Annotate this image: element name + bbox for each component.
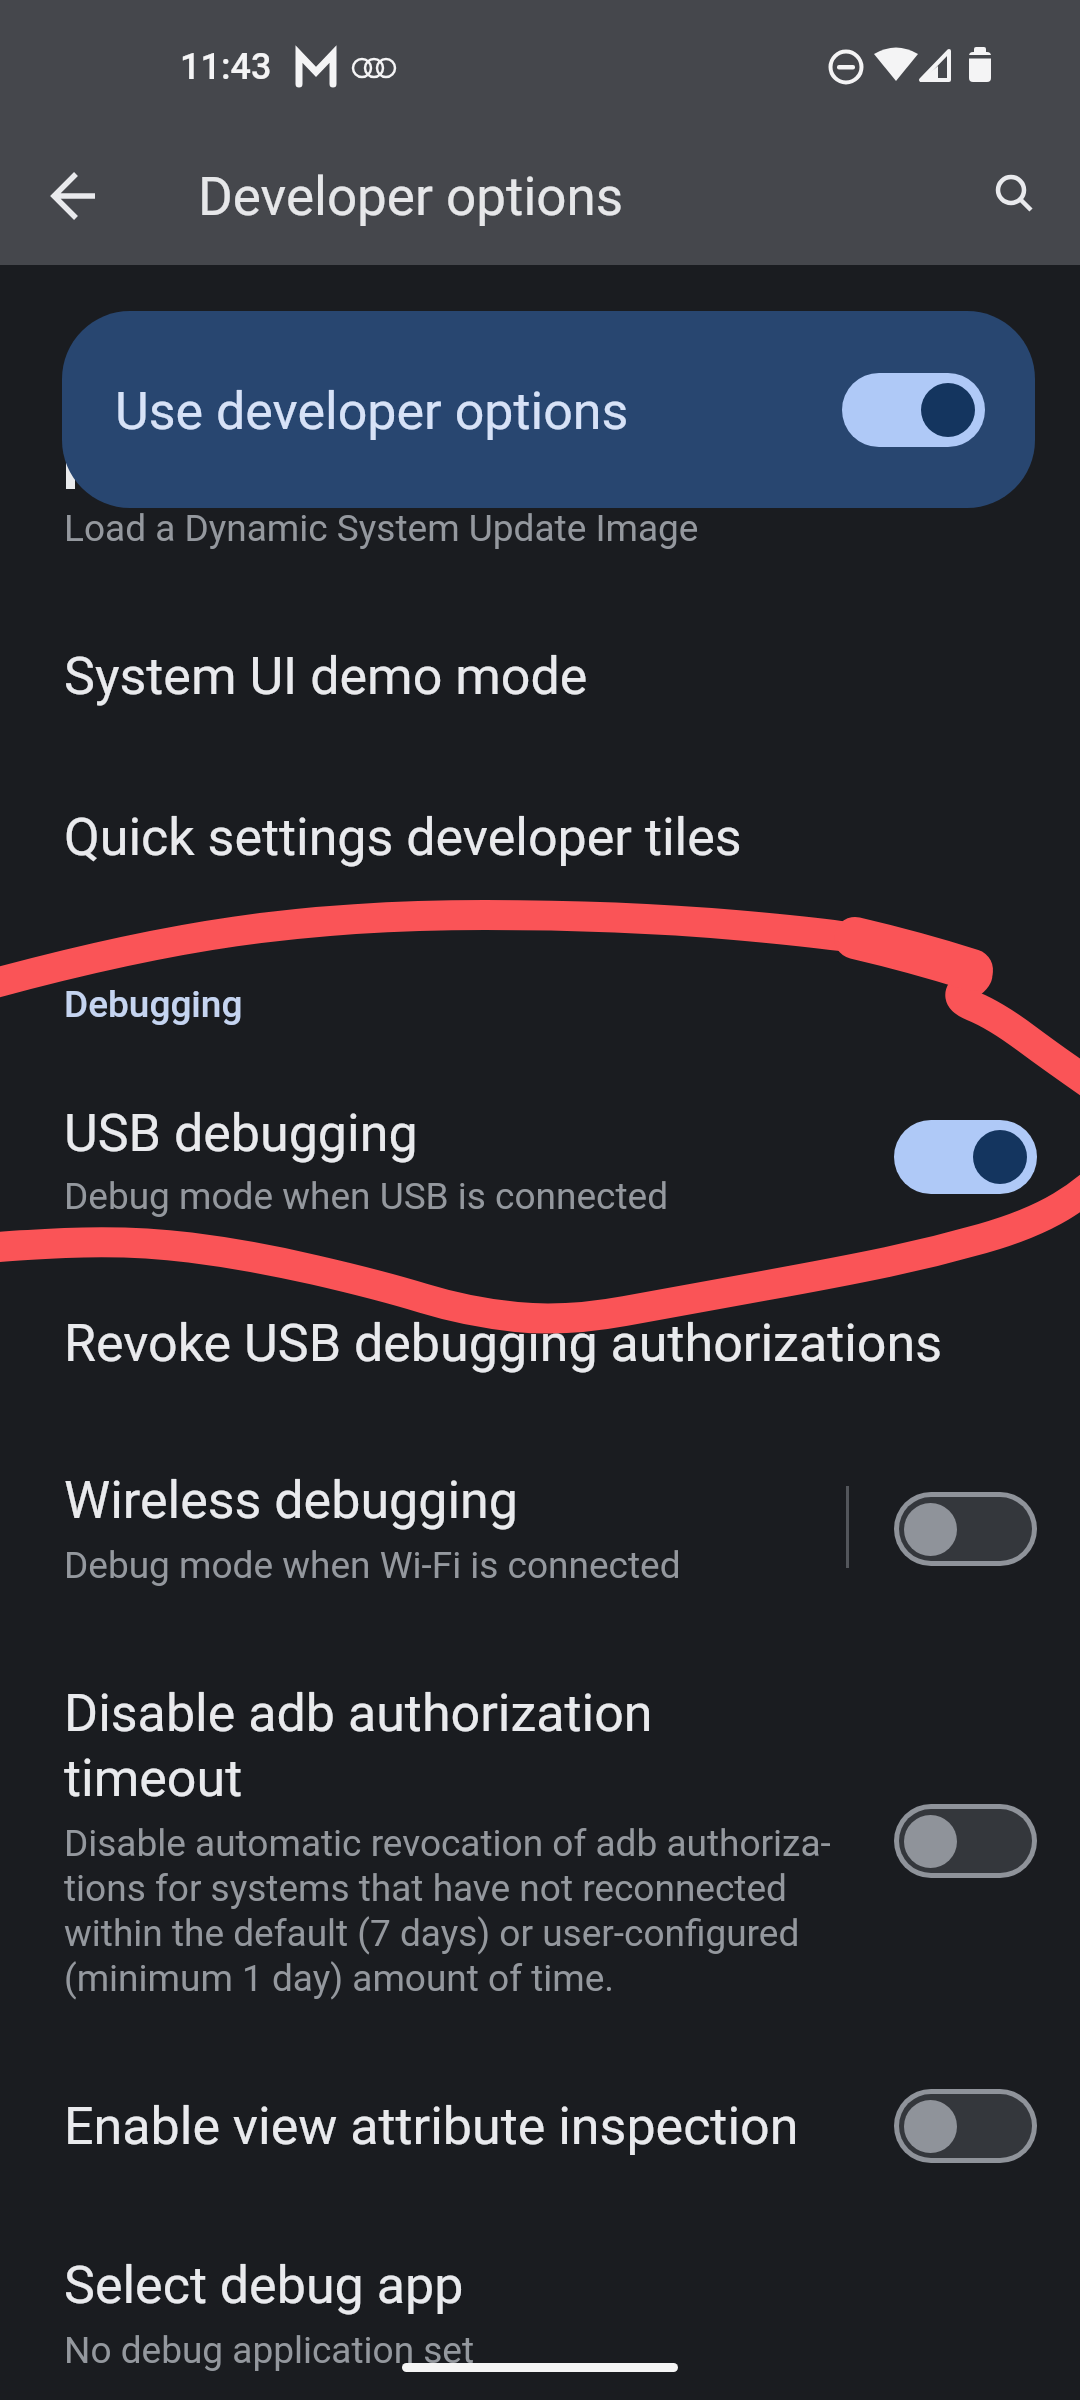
staticText: Enable view attribute inspection: [64, 2096, 799, 2157]
button[interactable]: [894, 1804, 1037, 1878]
staticText: Debugging: [64, 983, 243, 1026]
staticText: timeout: [64, 1748, 243, 1809]
button[interactable]: Use developer options: [62, 311, 1035, 508]
button[interactable]: Revoke USB debugging authorizations: [0, 1292, 1080, 1394]
staticText: Select debug app: [64, 2255, 464, 2316]
button[interactable]: [894, 2089, 1037, 2163]
button[interactable]: [894, 1120, 1037, 1194]
staticText: Disable adb authorization: [64, 1683, 653, 1744]
button[interactable]: Quick settings developer tiles: [0, 786, 1080, 888]
staticText: Debug mode when Wi-Fi is connected: [64, 1544, 681, 1587]
staticText: Quick settings developer tiles: [64, 807, 742, 868]
button[interactable]: Select debug app: [0, 2234, 1080, 2394]
button[interactable]: Disable adb authorization: [0, 1665, 1080, 2010]
staticText: Revoke USB debugging authorizations: [64, 1313, 943, 1374]
button[interactable]: Wireless debugging: [0, 1449, 1080, 1599]
staticText: Developer options: [198, 166, 624, 228]
staticText: (minimum 1 day) amount of time.: [64, 1957, 615, 2000]
button[interactable]: [842, 373, 985, 447]
staticText: Wireless debugging: [64, 1470, 519, 1531]
staticText: No debug application set: [64, 2329, 475, 2372]
staticText: Disable automatic revocation of adb auth…: [64, 1822, 831, 1865]
button[interactable]: Enable view attribute inspection: [0, 2075, 1080, 2177]
staticText: tions for systems that have not reconnec…: [64, 1867, 787, 1910]
staticText: 11:43: [180, 46, 272, 88]
staticText: Load a Dynamic System Update Image: [64, 507, 699, 550]
button[interactable]: [894, 1492, 1037, 1566]
staticText: Debug mode when USB is connected: [64, 1175, 669, 1218]
button[interactable]: USB debugging: [0, 1082, 1080, 1232]
staticText: USB debugging: [64, 1103, 418, 1164]
staticText: System UI demo mode: [64, 646, 588, 707]
staticText: within the default (7 days) or user-conf…: [64, 1912, 800, 1955]
staticText: Use developer options: [115, 381, 629, 442]
button[interactable]: System UI demo mode: [0, 625, 1080, 727]
